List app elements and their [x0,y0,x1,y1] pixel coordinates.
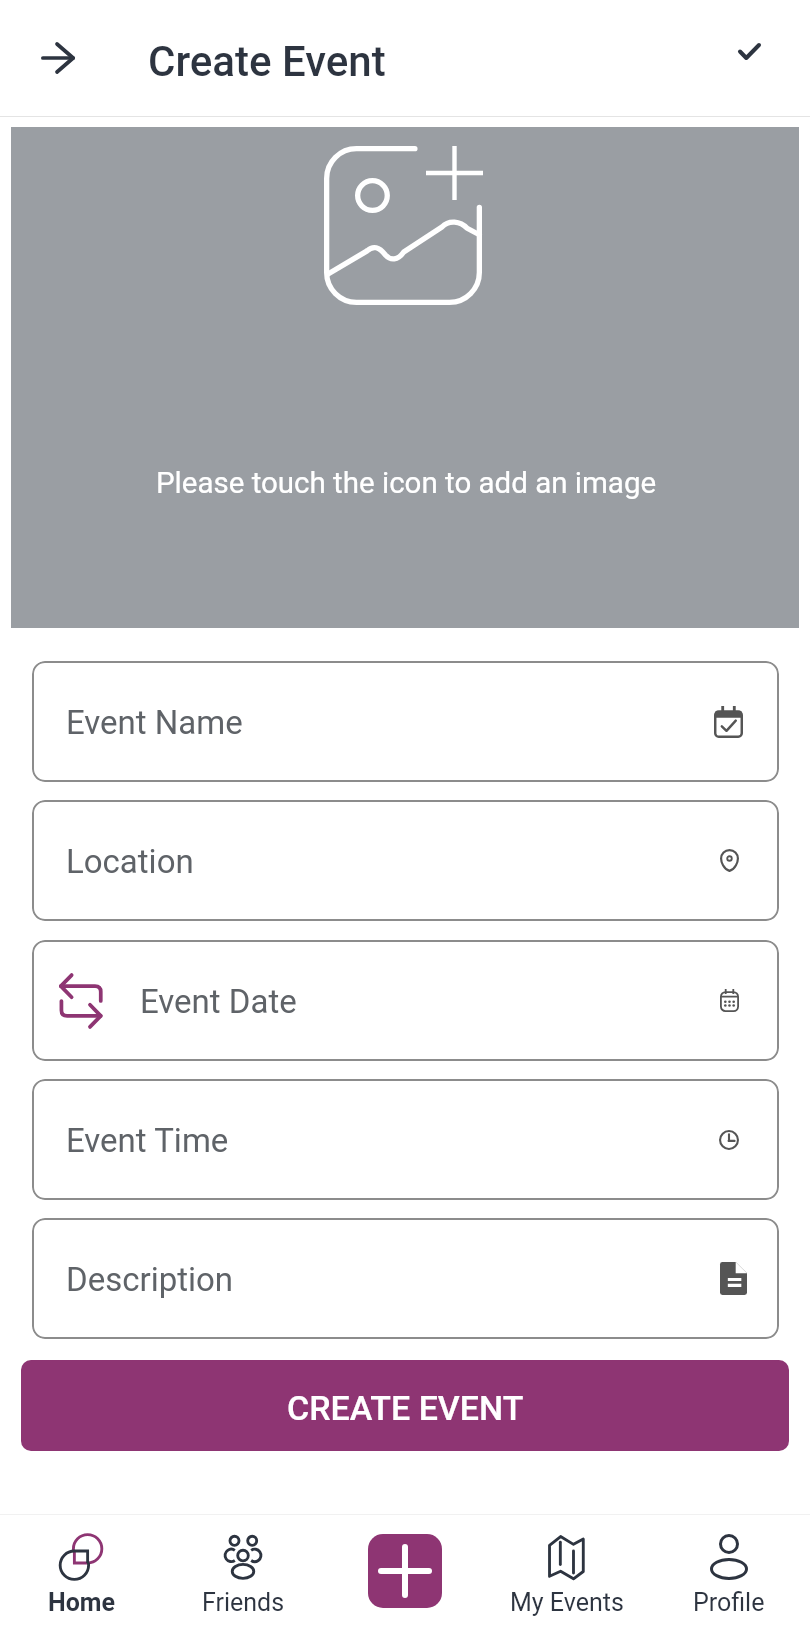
button[interactable]: Event Name [32,661,779,782]
button[interactable]: Event Time [32,1079,779,1200]
staticText: Create Event [148,37,386,86]
button[interactable]: Profile [648,1515,810,1650]
button[interactable]: Event Date [32,940,779,1061]
staticText: Description [66,1260,234,1299]
staticText: Location [66,842,194,881]
staticText: CREATE EVENT [287,1388,524,1428]
staticText: Event Time [66,1121,229,1160]
staticText: Friends [202,1588,285,1617]
button[interactable]: Friends [162,1515,324,1650]
button[interactable]: My Events [486,1515,648,1650]
staticText: My Events [510,1588,624,1617]
staticText: Profile [693,1588,765,1617]
button[interactable]: Create [368,1534,442,1608]
staticText: Please touch the icon to add an image [156,466,657,501]
button[interactable]: CREATE EVENT [21,1360,789,1451]
button[interactable]: Back [28,28,88,88]
staticText: Event Name [66,703,243,742]
staticText: Home [48,1588,115,1617]
button[interactable]: Add image [11,127,799,628]
button[interactable]: Save [719,21,779,81]
button[interactable]: Location [32,800,779,921]
staticText: Event Date [140,982,297,1021]
button[interactable]: Home [0,1515,162,1650]
button[interactable]: Description [32,1218,779,1339]
